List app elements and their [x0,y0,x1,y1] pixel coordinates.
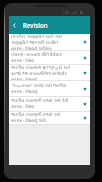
button[interactable]: "કેન્દ્ર-રાજ્ય" સંબંધો અને ભારતીય સરકાર … [9,81,90,96]
staticText: ભારતીય બંધારણના મૂળભૂત હકો અને ફરજો તથા … [11,65,71,80]
staticText: ભારતીય બંધારણની કલમો અને સરકાર : વિષયનું… [11,112,61,124]
button[interactable]: Bookmark [80,97,90,111]
button[interactable]: બંધારણ : રાજ્યના નીતિ નિર્દેશક સરકાર : વ… [9,51,90,64]
staticText: "કેન્દ્ર-રાજ્ય" સંબંધો અને ભારતીય સરકાર … [11,83,67,95]
staticText: બંધારણ : રાજ્યના નીતિ નિર્દેશક સરકાર : વ… [11,52,62,64]
button[interactable]: Bookmark [80,65,90,80]
staticText: નાગરીકો, અનુસૂચિત જાતિ અને અનુસૂચિત જનજા… [11,34,79,50]
button[interactable]: Bookmark [80,112,90,124]
button[interactable]: Bookmark [80,51,90,64]
staticText: Revision [23,21,48,29]
button[interactable]: Bookmark [80,81,90,96]
button[interactable]: નાગરીકો, અનુસૂચિત જાતિ અને અનુસૂચિત જનજા… [9,34,90,50]
button[interactable]: ભારતીય બંધારણના મૂળભૂત હકો અને ફરજો તથા … [9,65,90,80]
staticText: ભારતીય બંધારણની કલમો અને તેની સરકાર : વિ… [11,98,69,110]
button[interactable]: Back [9,16,20,34]
button[interactable]: Bookmark [80,34,90,50]
button[interactable]: ભારતીય બંધારણની કલમો અને સરકાર : વિષયનું… [9,112,90,124]
button[interactable]: ભારતીય બંધારણની કલમો અને તેની સરકાર : વિ… [9,97,90,111]
